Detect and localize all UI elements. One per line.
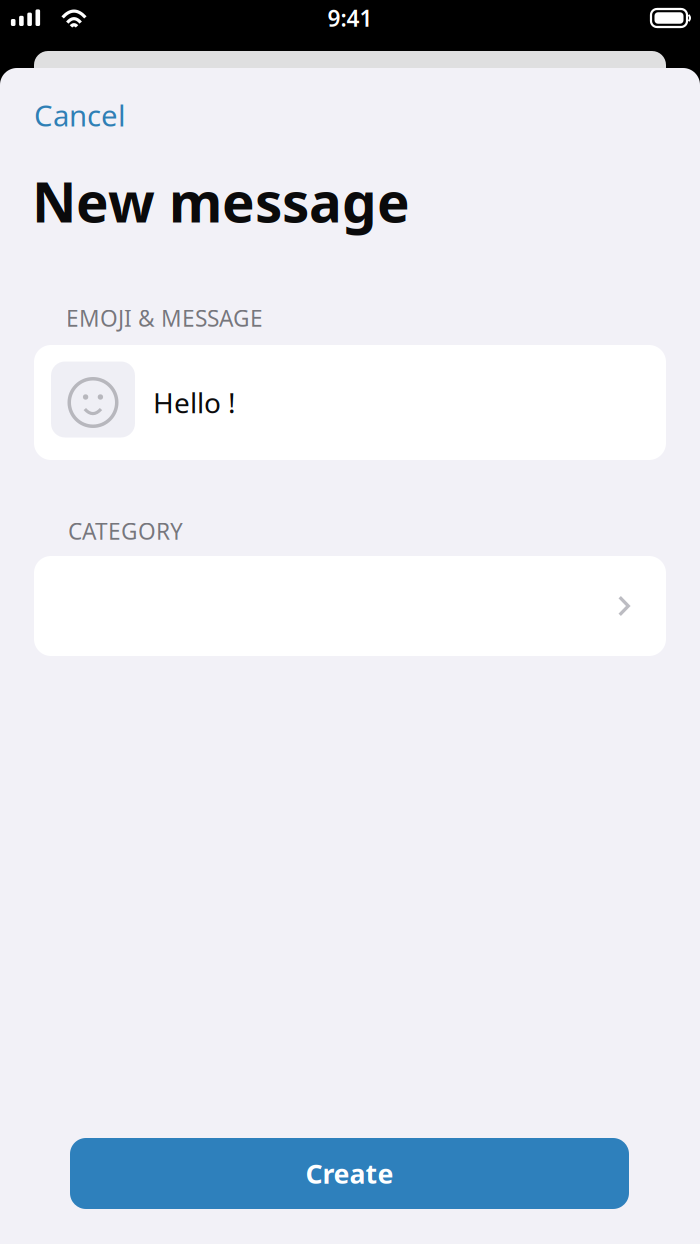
staticText: Hello ! [153,384,236,421]
staticText: Cancel [34,95,126,134]
button[interactable]: Hello ! [34,345,666,460]
button[interactable]: Create [70,1138,629,1209]
staticText: New message [32,165,410,238]
staticText: EMOJI & MESSAGE [66,303,263,333]
staticText: Create [305,1156,393,1191]
staticText: 9:41 [327,3,372,33]
button[interactable]: Cancel [34,93,144,137]
staticText: CATEGORY [68,516,183,546]
